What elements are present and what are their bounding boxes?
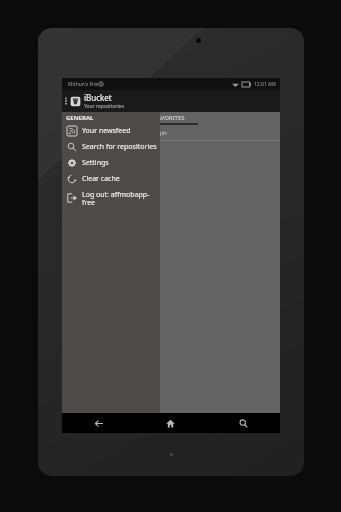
button[interactable]: Settings	[62, 155, 160, 171]
staticText: Your newsfeed	[82, 126, 131, 136]
staticText: Search for repositories	[82, 142, 157, 152]
staticText: Settings	[82, 158, 109, 168]
button[interactable]: Search	[207, 413, 280, 433]
button[interactable]: More options	[62, 90, 160, 112]
staticText: Your repositories	[84, 103, 125, 110]
button[interactable]: Search for repositories	[62, 139, 160, 155]
button[interactable]: Back	[62, 413, 134, 433]
staticText: ugin	[154, 129, 167, 137]
staticText: 12:01 AM	[254, 81, 276, 88]
staticText: FAVORITES	[154, 114, 185, 122]
button[interactable]: Your newsfeed	[62, 123, 160, 139]
staticText: GENERAL	[66, 114, 94, 122]
staticText: Clear cache	[82, 174, 120, 184]
button[interactable]: Clear cache	[62, 171, 160, 187]
other: More options	[64, 95, 68, 107]
button[interactable]: Home	[134, 413, 207, 433]
button[interactable]: Log out: affmobapp-free	[62, 187, 160, 209]
staticText: Log out: affmobapp-free	[82, 190, 157, 207]
staticText: iBucket	[84, 92, 112, 103]
staticText: Mithun's Fire	[68, 81, 99, 88]
